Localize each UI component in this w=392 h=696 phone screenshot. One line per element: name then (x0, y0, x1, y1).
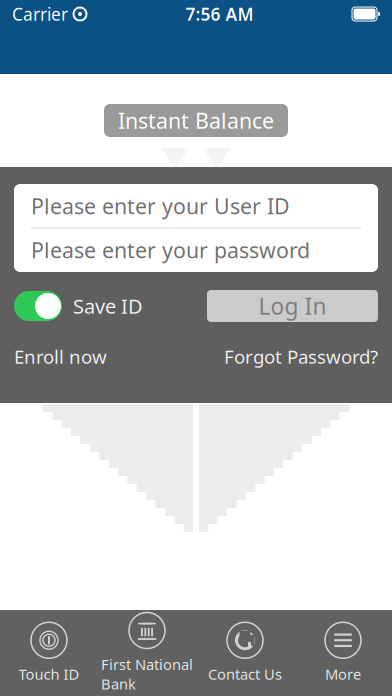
button[interactable]: Instant Balance (104, 104, 288, 137)
staticText: 7:56 AM (185, 2, 253, 25)
button[interactable]: Forgot Password? (224, 344, 378, 369)
staticText: Instant Balance (118, 106, 274, 135)
staticText: Save ID (73, 293, 143, 319)
staticText: Log In (258, 291, 326, 321)
staticText: Touch ID (18, 664, 79, 684)
button[interactable]: Enroll now (14, 344, 107, 369)
button[interactable]: Please enter your password (14, 228, 378, 271)
staticText: Please enter your User ID (31, 192, 290, 220)
staticText: First National Bank (101, 654, 193, 693)
button[interactable]: First National Bank (98, 619, 196, 687)
button[interactable]: Log In (207, 290, 378, 322)
staticText: Carrier (12, 2, 68, 25)
button[interactable]: Save ID (14, 291, 143, 321)
button[interactable]: Contact Us (196, 619, 294, 687)
staticText: Enroll now (14, 344, 107, 369)
staticText: Contact Us (208, 664, 282, 684)
staticText: Please enter your password (31, 236, 310, 264)
staticText: More (325, 664, 361, 684)
button[interactable]: More (294, 619, 392, 687)
button[interactable]: Touch ID (0, 619, 98, 687)
button[interactable]: Please enter your User ID (14, 184, 378, 227)
staticText: Forgot Password? (224, 344, 378, 369)
